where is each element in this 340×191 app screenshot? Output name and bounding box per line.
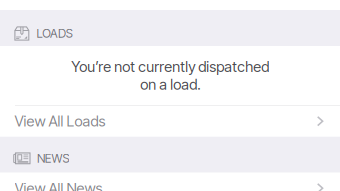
staticText: LOADS xyxy=(36,26,73,41)
staticText: You’re not currently dispatched on a loa… xyxy=(71,58,269,93)
button[interactable]: View All News xyxy=(0,173,340,191)
staticText: View All Loads xyxy=(15,112,106,130)
staticText: View All News xyxy=(15,179,103,191)
button[interactable]: View All Loads xyxy=(0,106,340,137)
staticText: NEWS xyxy=(37,151,69,166)
